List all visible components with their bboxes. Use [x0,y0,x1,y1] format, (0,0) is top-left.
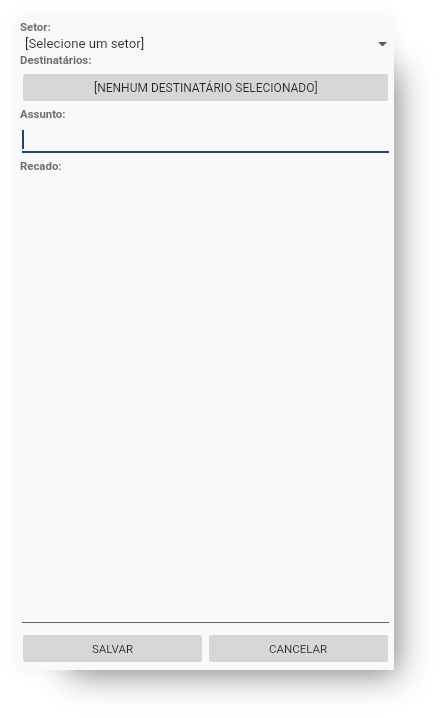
button[interactable]: [NENHUM DESTINATÁRIO SELECIONADO] [23,74,388,101]
staticText: Assunto: [20,107,66,120]
staticText: CANCELAR [269,642,328,655]
staticText: [NENHUM DESTINATÁRIO SELECIONADO] [94,81,318,95]
staticText: Setor: [20,20,51,33]
other: Abrir lista de setores [378,39,387,48]
button[interactable]: CANCELAR [209,635,388,662]
button[interactable]: SALVAR [23,635,202,662]
staticText: SALVAR [92,642,134,655]
staticText: Recado: [20,159,62,172]
button[interactable] [22,125,389,153]
staticText: [Selecione um setor] [25,36,145,51]
staticText: Destinatários: [20,53,92,66]
button[interactable]: [Selecione um setor] [17,33,394,53]
